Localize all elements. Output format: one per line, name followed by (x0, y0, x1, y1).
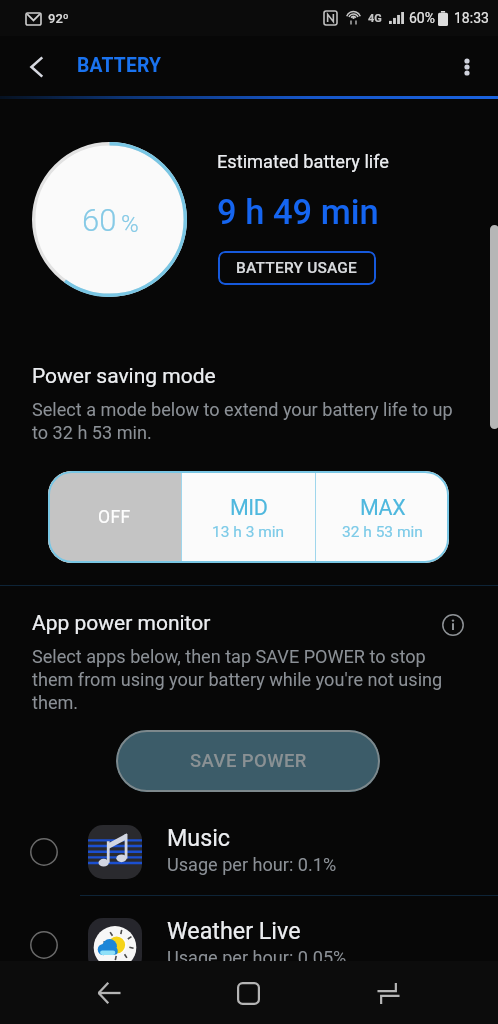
button[interactable]: Navigate up (12, 42, 62, 92)
button[interactable]: MID (182, 471, 315, 563)
staticText: OFF (98, 507, 131, 528)
button[interactable]: Recent apps (358, 967, 418, 1019)
button[interactable]: Music (0, 808, 498, 895)
button[interactable]: SAVE POWER (116, 730, 380, 792)
staticText: MID (230, 495, 268, 520)
staticText: 60% (409, 10, 435, 26)
button[interactable]: Back (79, 967, 139, 1019)
button[interactable]: BATTERY USAGE (218, 251, 376, 285)
staticText: % (121, 210, 139, 238)
button[interactable]: More options (442, 42, 492, 92)
staticText: 60 (82, 202, 117, 238)
staticText: Usage per hour: 0.1% (167, 854, 337, 875)
staticText: Select a mode below to extend your batte… (32, 399, 460, 444)
button[interactable]: Home (218, 967, 278, 1019)
button[interactable]: OFF (48, 471, 181, 563)
staticText: Weather Live (167, 917, 301, 944)
staticText: 13 h 3 min (212, 523, 285, 541)
staticText: 18:33 (454, 10, 489, 26)
staticText: BATTERY (77, 54, 162, 77)
staticText: App power monitor (32, 611, 211, 636)
staticText: Usage per hour: 0.05% (167, 947, 347, 968)
staticText: Music (167, 824, 231, 851)
staticText: 92º (48, 11, 69, 26)
staticText: 32 h 53 min (342, 523, 423, 541)
staticText: Estimated battery life (217, 151, 389, 172)
button[interactable]: Information (438, 610, 468, 640)
staticText: Power saving mode (32, 364, 216, 389)
button[interactable]: Weather Live (0, 901, 498, 988)
staticText: SAVE POWER (190, 750, 307, 772)
button[interactable]: MAX (316, 471, 449, 563)
staticText: MAX (360, 495, 406, 520)
staticText: 4G (368, 12, 382, 25)
staticText: 9 h 49 min (217, 192, 379, 232)
staticText: Select apps below, then tap SAVE POWER t… (32, 646, 444, 714)
staticText: BATTERY USAGE (236, 259, 358, 277)
